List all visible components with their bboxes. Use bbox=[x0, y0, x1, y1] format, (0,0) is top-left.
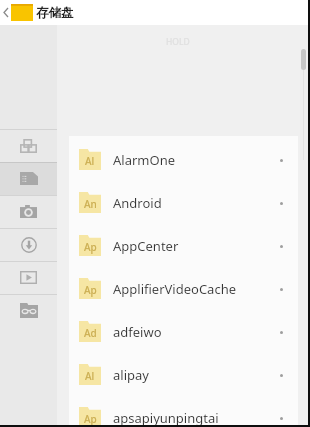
button[interactable]: An bbox=[69, 181, 298, 224]
staticText: An bbox=[84, 197, 97, 211]
staticText: Android bbox=[113, 194, 162, 212]
button[interactable]: Ap bbox=[69, 267, 298, 310]
button[interactable]: More options bbox=[271, 150, 291, 170]
staticText: Ap bbox=[84, 412, 97, 426]
button[interactable]: Downloads bbox=[0, 228, 57, 261]
button[interactable]: More options bbox=[271, 322, 291, 342]
staticText: Ad bbox=[84, 326, 97, 340]
button[interactable]: Back bbox=[0, 0, 11, 25]
staticText: AlarmOne bbox=[113, 151, 175, 169]
button[interactable]: Apps bbox=[0, 294, 57, 327]
staticText: Ap bbox=[84, 240, 97, 254]
staticText: 存储盘 bbox=[36, 5, 74, 21]
button[interactable]: More options bbox=[271, 365, 291, 385]
button[interactable]: Al bbox=[69, 138, 298, 181]
staticText: Ap bbox=[84, 283, 97, 297]
button[interactable]: More options bbox=[271, 193, 291, 213]
button[interactable]: Ap bbox=[69, 396, 298, 427]
staticText: AppCenter bbox=[113, 237, 179, 255]
button[interactable]: More options bbox=[271, 236, 291, 256]
staticText: Al bbox=[85, 154, 95, 168]
button[interactable]: Ap bbox=[69, 224, 298, 267]
staticText: ApplifierVideoCache bbox=[113, 280, 236, 298]
staticText: HOLD bbox=[166, 36, 190, 48]
button[interactable]: Documents bbox=[0, 162, 57, 195]
button[interactable]: Videos bbox=[0, 261, 57, 294]
button[interactable]: Photos bbox=[0, 195, 57, 228]
button[interactable]: Categories bbox=[0, 129, 57, 162]
staticText: Al bbox=[85, 369, 95, 383]
staticText: apsapiyunpingtai bbox=[113, 409, 219, 427]
button[interactable]: Al bbox=[69, 353, 298, 396]
button[interactable]: More options bbox=[271, 279, 291, 299]
button[interactable]: More options bbox=[271, 408, 291, 427]
staticText: alipay bbox=[113, 366, 149, 384]
staticText: adfeiwo bbox=[113, 323, 162, 341]
button[interactable]: Ad bbox=[69, 310, 298, 353]
